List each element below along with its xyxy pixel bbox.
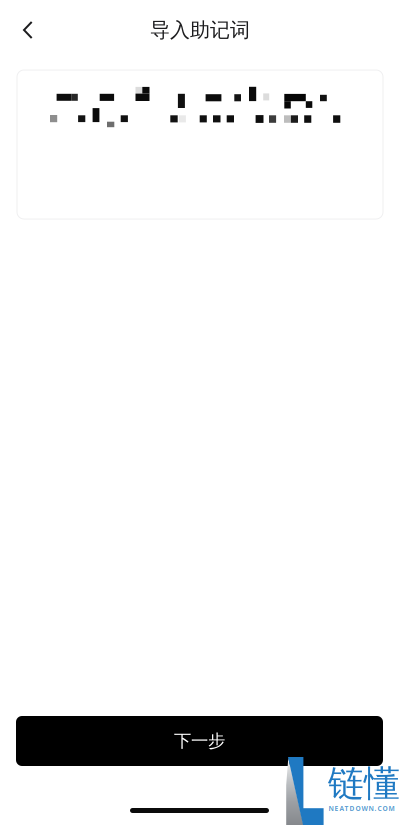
button[interactable]: Back <box>6 8 50 52</box>
staticText: 导入助记词 <box>150 18 250 42</box>
staticText: NEATDOWN.COM <box>328 804 394 813</box>
staticText: 下一步 <box>174 730 225 752</box>
button[interactable]: 下一步 <box>16 716 383 766</box>
staticText: 链懂 <box>328 761 400 806</box>
